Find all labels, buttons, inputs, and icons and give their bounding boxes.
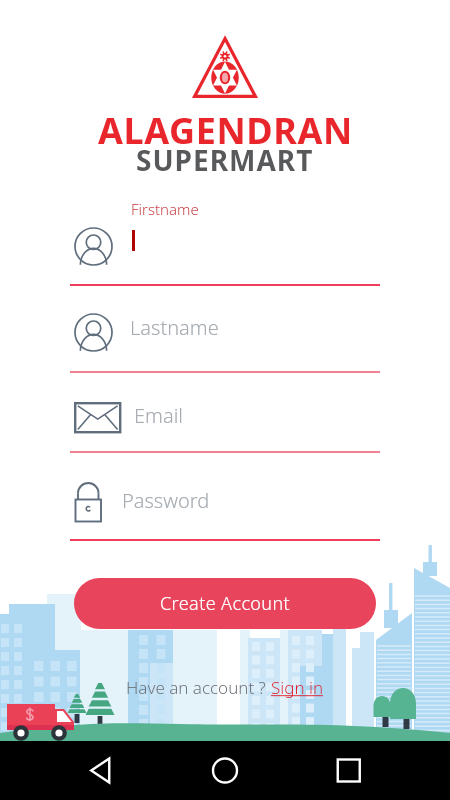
button[interactable]: [70, 477, 380, 541]
button[interactable]: [70, 222, 380, 286]
button[interactable]: Create Account: [74, 578, 376, 629]
button[interactable]: [70, 389, 380, 453]
staticText: Password: [122, 487, 210, 514]
button[interactable]: [70, 309, 380, 373]
staticText: SUPERMART: [136, 141, 314, 179]
staticText: Firstname: [131, 199, 199, 219]
staticText: Have an account ?: [126, 676, 271, 699]
button[interactable]: Back: [80, 741, 450, 800]
staticText: ALAGENDRAN: [98, 106, 353, 155]
staticText: Email: [134, 402, 183, 429]
staticText: Lastname: [130, 314, 219, 341]
button[interactable]: Sign in: [271, 676, 324, 699]
staticText: Sign in: [271, 676, 324, 699]
staticText: Create Account: [160, 591, 291, 616]
